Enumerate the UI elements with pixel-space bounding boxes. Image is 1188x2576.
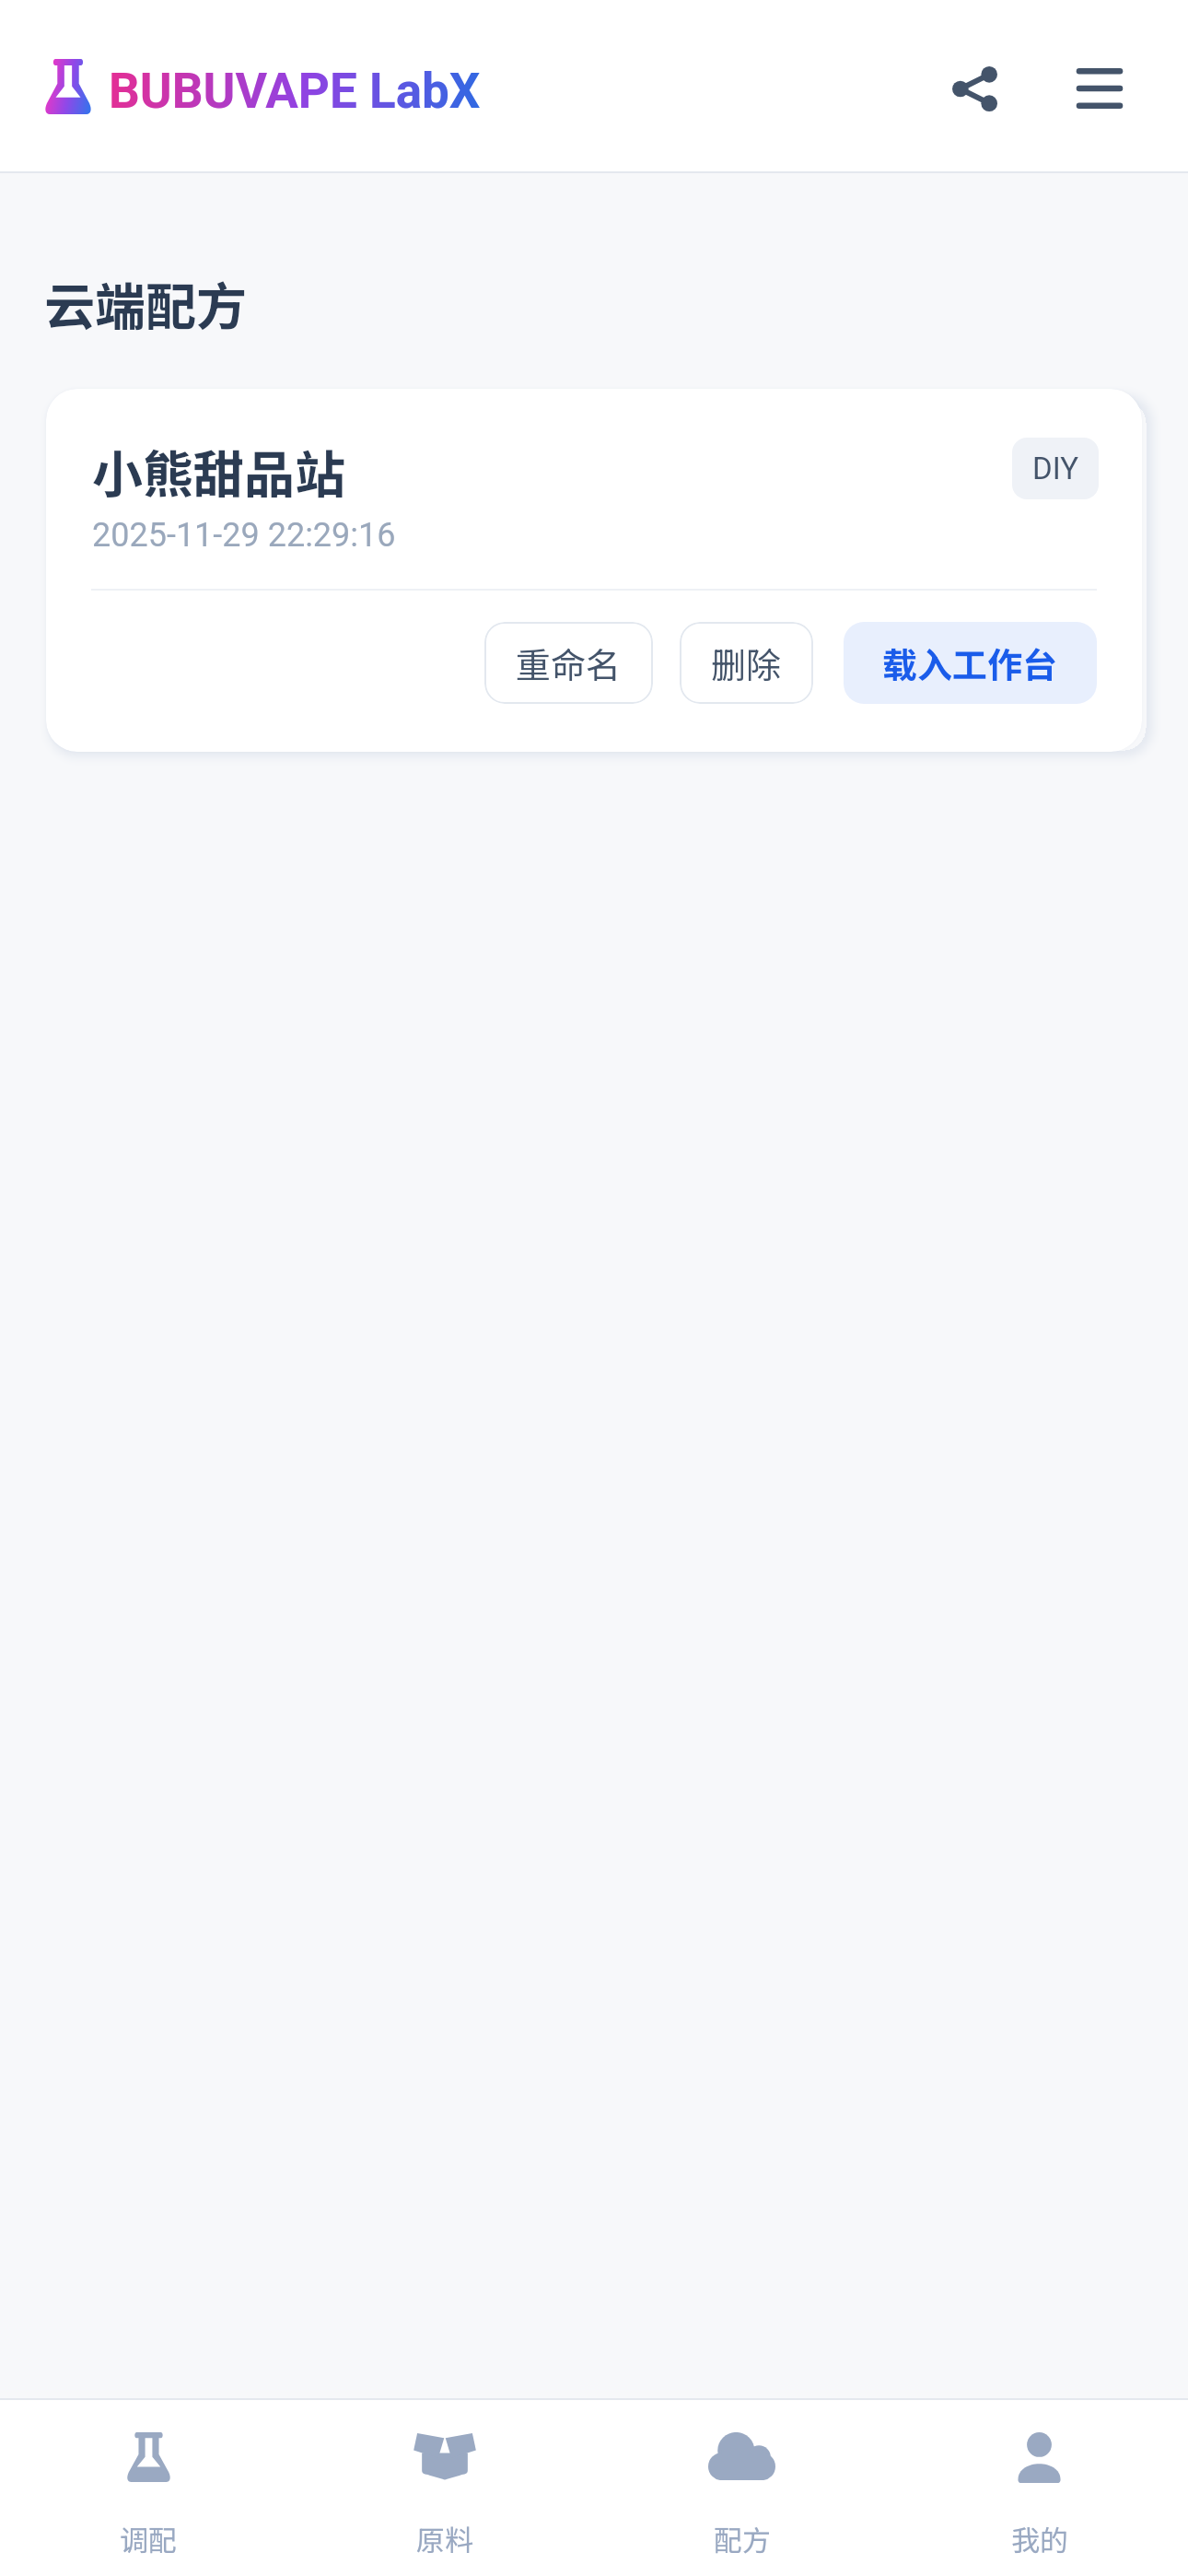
staticText: 调配 (120, 2518, 177, 2559)
staticText: 我的 (1011, 2518, 1068, 2559)
staticText: DIY (1032, 451, 1078, 486)
staticText: 载入工作台 (882, 638, 1058, 688)
button[interactable]: Menu (1058, 45, 1141, 128)
staticText: BUBUVAPE LabX (109, 63, 481, 120)
staticText: 2025-11-29 22:29:16 (92, 516, 396, 555)
button[interactable]: 我的 (891, 2398, 1188, 2576)
button[interactable]: 调配 (0, 2398, 297, 2576)
staticText: 小熊甜品站 (92, 434, 346, 508)
button[interactable]: 删除 (680, 622, 813, 704)
button[interactable]: 配方 (593, 2398, 891, 2576)
staticText: 云端配方 (44, 266, 248, 340)
staticText: 原料 (416, 2518, 473, 2559)
button[interactable]: 重命名 (484, 622, 653, 704)
button[interactable]: 原料 (297, 2398, 593, 2576)
staticText: 重命名 (516, 638, 622, 688)
staticText: 删除 (711, 638, 782, 688)
button[interactable]: 载入工作台 (844, 622, 1097, 704)
button[interactable]: Share (933, 45, 1016, 128)
staticText: 配方 (714, 2518, 771, 2559)
